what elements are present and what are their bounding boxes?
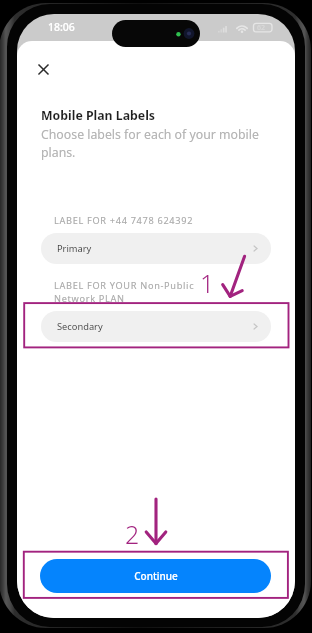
- button[interactable]: Continue: [40, 559, 271, 593]
- staticText: Choose labels for each of your mobile pl…: [41, 125, 281, 161]
- staticText: 18:06: [48, 20, 75, 34]
- staticText: Mobile Plan Labels: [41, 107, 155, 124]
- staticText: Secondary: [57, 320, 103, 333]
- button[interactable]: Secondary: [41, 311, 271, 342]
- staticText: LABEL FOR YOUR Non-Public Network PLAN: [54, 279, 217, 305]
- staticText: 1: [200, 266, 215, 300]
- staticText: Continue: [134, 569, 178, 583]
- button[interactable]: Primary: [41, 233, 271, 264]
- button[interactable]: Close: [30, 56, 56, 82]
- staticText: 2: [125, 517, 140, 551]
- staticText: LABEL FOR +44 7478 624392: [54, 214, 194, 227]
- staticText: Primary: [57, 242, 92, 255]
- staticText: 62: [257, 23, 266, 33]
